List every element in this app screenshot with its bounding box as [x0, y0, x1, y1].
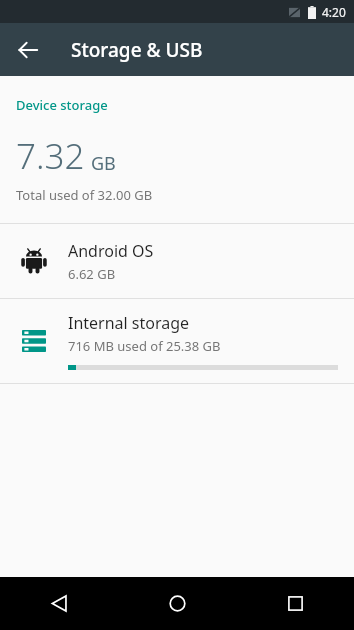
- button[interactable]: Internal storage: [0, 299, 354, 383]
- button[interactable]: Home: [118, 577, 236, 630]
- staticText: 4:20: [322, 4, 346, 20]
- staticText: 6.62 GB: [68, 265, 116, 283]
- staticText: Total used of 32.00 GB: [16, 186, 153, 204]
- staticText: Internal storage: [68, 312, 190, 334]
- staticText: 716 MB used of 25.38 GB: [68, 337, 221, 355]
- staticText: Device storage: [16, 96, 108, 114]
- staticText: 7.32: [16, 132, 85, 180]
- button[interactable]: Recent apps: [236, 577, 354, 630]
- button[interactable]: Navigate up: [6, 28, 50, 72]
- staticText: Storage & USB: [71, 37, 203, 63]
- button[interactable]: Back: [0, 577, 118, 630]
- staticText: GB: [91, 151, 116, 176]
- staticText: Android OS: [68, 240, 154, 262]
- button[interactable]: Android OS: [0, 224, 354, 298]
